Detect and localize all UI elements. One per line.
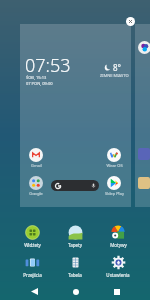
button[interactable]: Back [22, 283, 47, 300]
staticText: 8° [113, 62, 121, 73]
button[interactable]: Next page [135, 24, 150, 207]
button[interactable]: Przejścia [12, 255, 52, 278]
button[interactable]: 07:53 [20, 24, 131, 207]
staticText: 07:53 [25, 53, 71, 78]
button[interactable] [51, 180, 99, 191]
button[interactable]: Sklep Play [101, 176, 127, 196]
staticText: Google [29, 191, 43, 196]
staticText: Ustawienia [106, 272, 130, 278]
button[interactable]: Tapety [55, 225, 95, 248]
button[interactable]: Ustawienia [98, 255, 138, 278]
staticText: ZIMNE MIASTO [100, 73, 129, 78]
staticText: Gmail [31, 163, 42, 168]
button[interactable]: Recent apps [104, 283, 129, 300]
button[interactable]: Gmail [23, 148, 49, 168]
button[interactable]: Google [23, 176, 49, 196]
staticText: Tabela [68, 272, 82, 278]
button[interactable]: Widżety [12, 225, 52, 248]
staticText: Tapety [68, 242, 82, 248]
staticText: Widżety [24, 242, 41, 248]
button[interactable]: Home [63, 283, 88, 300]
staticText: Sklep Play [105, 191, 124, 196]
button[interactable]: Tabela [55, 255, 95, 278]
button[interactable]: Motywy [98, 225, 138, 248]
button[interactable]: Wear OS [101, 148, 127, 168]
staticText: ŚOB, 15:13 [26, 75, 47, 80]
staticText: Przejścia [23, 272, 42, 278]
button[interactable]: Remove widget [126, 17, 135, 26]
staticText: Wear OS [106, 163, 123, 168]
staticText: Motywy [110, 242, 127, 248]
staticText: 07 PON, 09:00 [26, 81, 53, 86]
